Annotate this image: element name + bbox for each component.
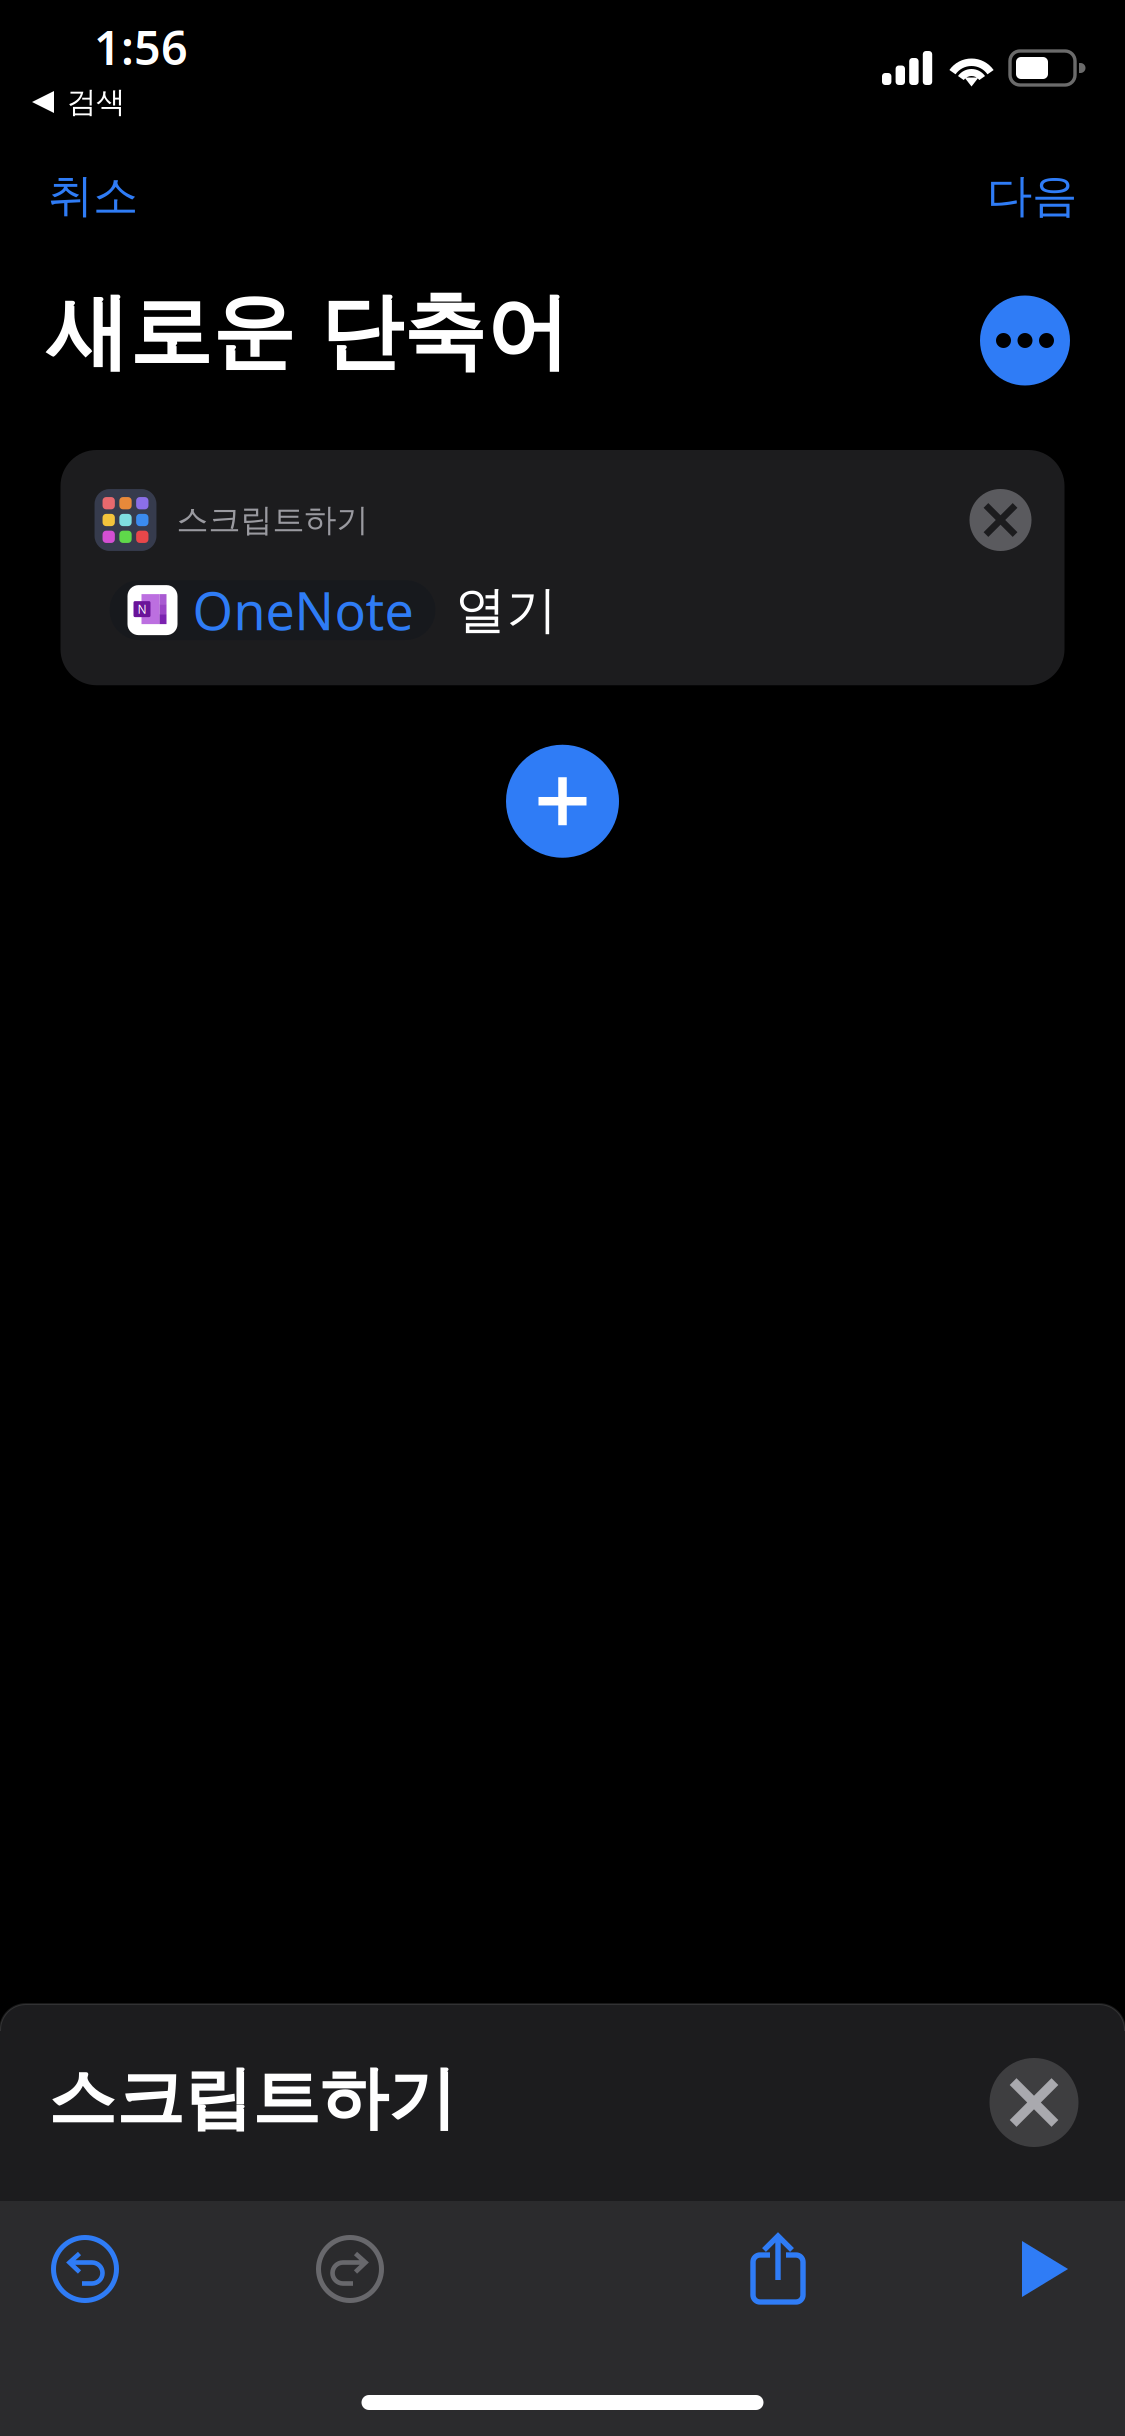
staticText: 검색 xyxy=(67,84,125,120)
staticText: 다음 xyxy=(987,168,1077,224)
staticText: 1:56 xyxy=(94,16,188,78)
button[interactable]: 검색 xyxy=(0,81,147,123)
staticText: 새로운 단축어 xyxy=(46,282,569,383)
button[interactable]: Close xyxy=(974,2042,1094,2162)
button[interactable]: Share xyxy=(713,2216,843,2322)
staticText: N xyxy=(137,601,146,617)
button[interactable]: N xyxy=(109,580,435,640)
staticText: OneNote xyxy=(192,576,413,645)
button[interactable]: Add action xyxy=(487,726,637,876)
staticText: 스크립트하기 xyxy=(176,500,368,540)
staticText: 스크립트하기 xyxy=(48,2057,456,2140)
button[interactable]: 다음 xyxy=(939,140,1125,252)
button[interactable]: Remove action xyxy=(952,472,1048,568)
button[interactable]: Undo xyxy=(20,2216,150,2322)
staticText: 열기 xyxy=(455,579,557,641)
button[interactable]: Redo xyxy=(285,2216,415,2322)
button[interactable]: Run xyxy=(980,2216,1110,2322)
staticText: 취소 xyxy=(48,168,138,224)
button[interactable]: 취소 xyxy=(0,140,186,252)
button[interactable]: More xyxy=(964,279,1086,401)
